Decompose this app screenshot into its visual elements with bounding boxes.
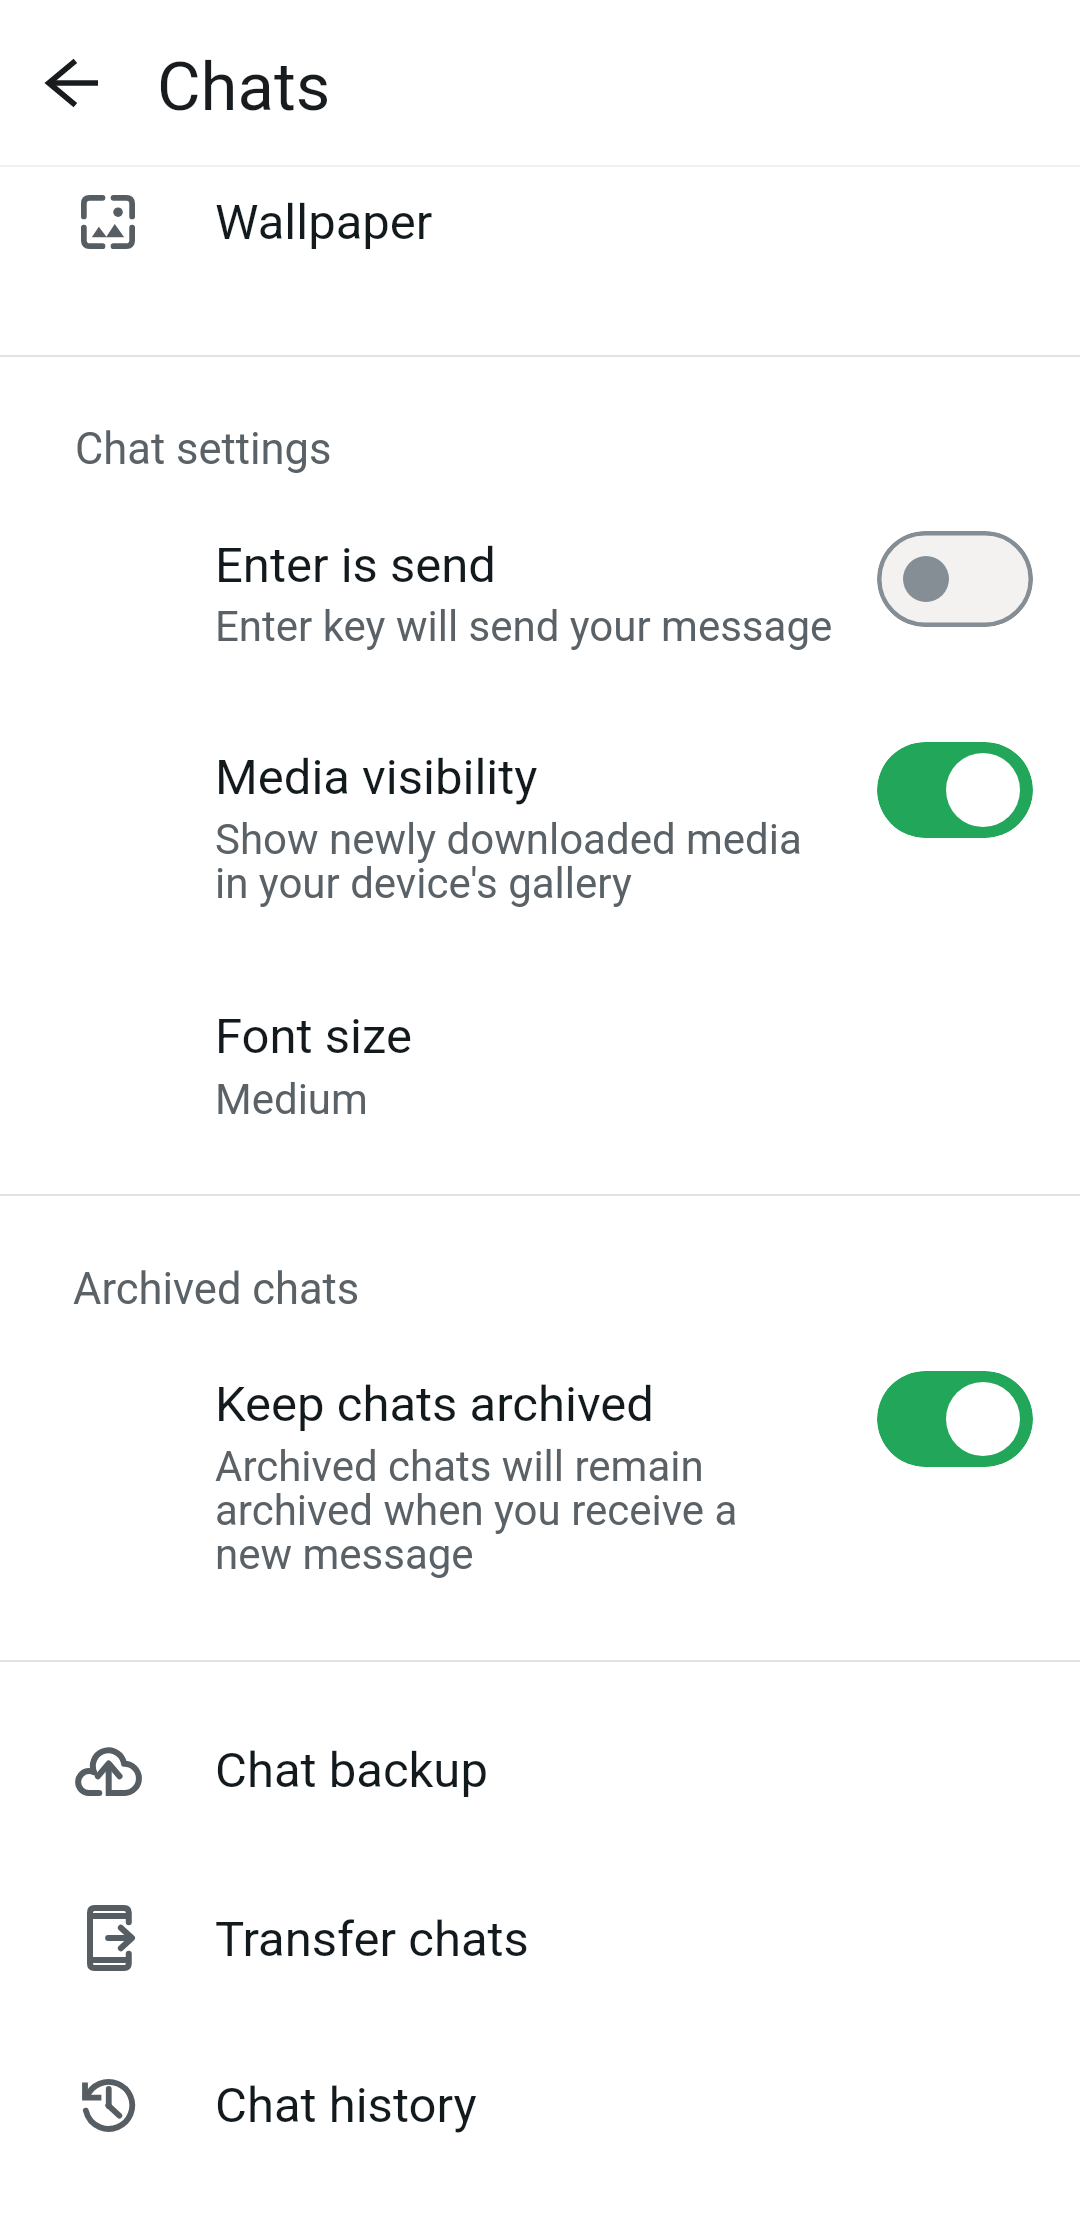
button[interactable]: Transfer chats (0, 1862, 1080, 2028)
staticText: in your device's gallery (215, 859, 632, 908)
staticText: Enter key will send your message (215, 602, 833, 651)
button[interactable]: Back (21, 32, 123, 134)
staticText: Chat history (215, 2077, 477, 2134)
staticText: new message (215, 1530, 474, 1579)
staticText: Transfer chats (215, 1911, 529, 1968)
staticText: Archived chats (73, 1264, 360, 1315)
button[interactable]: On (877, 742, 1033, 838)
staticText: Chats (157, 48, 331, 127)
button[interactable]: Chat history (0, 2030, 1080, 2196)
button[interactable]: Off (877, 531, 1033, 627)
button[interactable]: Keep chats archived (0, 1340, 1080, 1608)
staticText: Medium (215, 1075, 368, 1124)
staticText: archived when you receive a (215, 1486, 738, 1535)
button[interactable]: Media visibility (0, 710, 1080, 938)
button[interactable]: Wallpaper (0, 167, 1080, 355)
staticText: Media visibility (215, 749, 538, 806)
staticText: Wallpaper (215, 194, 433, 251)
staticText: Chat settings (75, 424, 332, 475)
button[interactable]: On (877, 1371, 1033, 1467)
staticText: Archived chats will remain (215, 1442, 704, 1491)
staticText: Keep chats archived (215, 1376, 654, 1433)
button[interactable]: Chat backup (0, 1694, 1080, 1860)
button[interactable]: Enter is send (0, 500, 1080, 678)
staticText: Font size (215, 1008, 412, 1065)
staticText: Show newly downloaded media (215, 815, 802, 864)
button[interactable]: Font size (0, 975, 1080, 1147)
staticText: Chat backup (215, 1742, 488, 1799)
staticText: Enter is send (215, 537, 497, 594)
